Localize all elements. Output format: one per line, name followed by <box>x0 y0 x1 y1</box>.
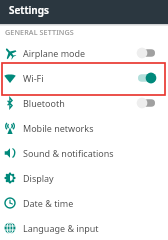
button[interactable]: Settings <box>0 0 168 24</box>
button[interactable]: Wi-Fi <box>0 65 168 90</box>
button[interactable]: Toggle off <box>137 46 157 60</box>
staticText: Bluetooth <box>23 97 65 109</box>
staticText: Wi-Fi <box>23 72 44 84</box>
staticText: GENERAL SETTINGS <box>5 27 74 37</box>
staticText: Date & time <box>23 197 74 209</box>
button[interactable]: Airplane mode <box>0 40 168 65</box>
button[interactable]: Toggle off <box>137 96 157 110</box>
button[interactable]: Language & input <box>0 215 168 240</box>
button[interactable]: Sound & notifications <box>0 140 168 165</box>
button[interactable]: Display <box>0 165 168 190</box>
staticText: Language & input <box>23 222 99 234</box>
button[interactable]: Toggle on <box>137 71 157 85</box>
staticText: Airplane mode <box>23 47 86 59</box>
staticText: Mobile networks <box>23 122 94 134</box>
staticText: Sound & notifications <box>23 147 114 159</box>
staticText: Settings <box>9 3 49 17</box>
button[interactable]: Mobile networks <box>0 115 168 140</box>
staticText: Display <box>23 172 54 184</box>
button[interactable]: Bluetooth <box>0 90 168 115</box>
button[interactable]: Date & time <box>0 190 168 215</box>
